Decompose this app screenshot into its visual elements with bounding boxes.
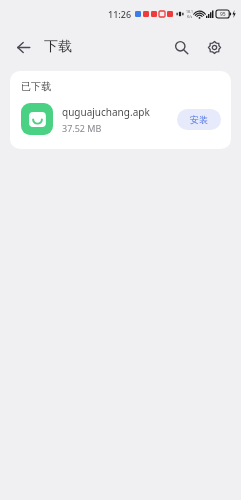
staticText: K/s [187,14,193,19]
staticText: 18.1 [186,9,193,14]
button[interactable]: Back [8,32,38,62]
button[interactable]: Settings [199,32,229,62]
staticText: 11:26 [108,8,132,20]
staticText: 安装 [190,114,208,125]
staticText: 已下载 [21,80,51,93]
button[interactable]: quguajuchang.apk [10,103,231,135]
staticText: quguajuchang.apk [62,105,150,119]
staticText: 95 [220,11,226,18]
staticText: 下载 [44,38,72,56]
button[interactable]: 安装 [177,109,221,130]
staticText: 37.52 MB [62,122,102,134]
button[interactable]: Search [166,32,196,62]
